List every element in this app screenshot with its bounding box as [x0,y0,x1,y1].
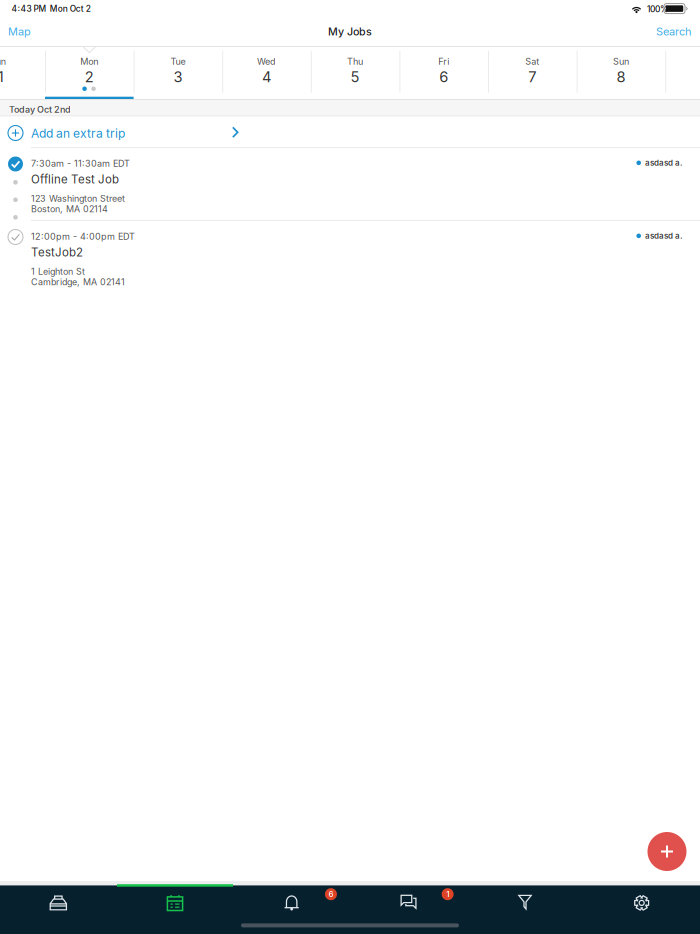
staticText: Wed [257,56,276,67]
staticText: Boston, MA 02114 [31,204,108,214]
staticText: 12:00pm - 4:00pm EDT [31,231,135,242]
staticText: 123 Washington Street [31,193,125,204]
button[interactable]: Search [648,18,699,45]
staticText: 2 [85,68,94,86]
button[interactable]: Trips [0,888,117,918]
staticText: 8 [616,68,625,86]
button[interactable]: Messages [350,888,467,918]
staticText: 4:43 PM [11,4,46,14]
button[interactable]: Tue [134,47,222,99]
staticText: 3 [173,68,182,86]
button[interactable]: Mon [45,47,134,99]
staticText: Today Oct 2nd [9,104,71,115]
button[interactable]: Sat [488,47,577,99]
button[interactable]: My Jobs [117,888,233,918]
staticText: 6 [439,68,448,86]
staticText: 4 [262,68,271,86]
button[interactable]: Filters [467,888,583,918]
staticText: Fri [438,56,449,67]
button[interactable]: 7:30am - 11:30am EDT [0,148,700,221]
staticText: Map [8,25,31,38]
staticText: My Jobs [328,25,372,38]
staticText: 100% [647,4,668,14]
staticText: Offline Test Job [31,172,119,186]
staticText: Add an extra trip [31,126,125,140]
staticText: Sat [525,56,539,67]
button[interactable]: Add an extra trip [0,116,700,147]
button[interactable]: un [0,47,45,99]
button[interactable]: Map [0,18,39,45]
staticText: 1 [0,68,4,86]
staticText: Cambridge, MA 02141 [31,277,125,287]
staticText: Sun [613,56,629,67]
staticText: 5 [351,68,360,86]
button[interactable]: Notifications [233,888,350,918]
button[interactable]: 12:00pm - 4:00pm EDT [0,221,700,294]
staticText: Search [656,25,691,38]
staticText: Thu [347,56,363,67]
staticText: 1 [446,889,449,899]
staticText: un [0,56,6,67]
staticText: Mon Oct 2 [50,4,91,14]
staticText: Mon [80,56,98,67]
staticText: asdasd a. [645,158,683,168]
staticText: 6 [328,889,333,899]
button[interactable]: Settings [583,888,700,918]
staticText: asdasd a. [645,231,683,241]
staticText: Tue [170,56,185,67]
staticText: 7:30am - 11:30am EDT [31,158,130,169]
button[interactable]: Thu [311,47,399,99]
button[interactable]: Wed [222,47,311,99]
button[interactable]: Add a job [647,832,686,871]
button[interactable]: Fri [399,47,488,99]
staticText: 7 [528,68,536,86]
staticText: 1 Leighton St [31,266,85,277]
staticText: TestJob2 [31,245,83,259]
button[interactable]: Sun [577,47,665,99]
